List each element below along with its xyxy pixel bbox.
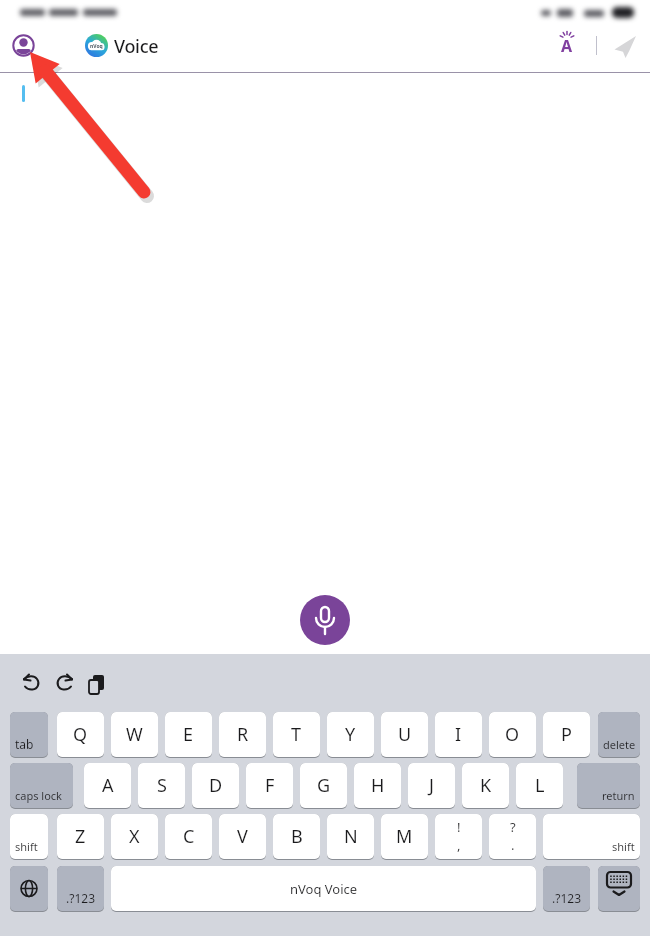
staticText: S	[157, 773, 167, 798]
staticText: V	[237, 824, 248, 849]
staticText: A	[102, 773, 114, 798]
button[interactable]: G	[300, 763, 347, 808]
button[interactable]: Z	[57, 814, 104, 859]
staticText: X	[129, 824, 140, 849]
staticText: G	[317, 773, 331, 798]
button[interactable]: H	[354, 763, 401, 808]
staticText: P	[561, 722, 572, 747]
button[interactable]: tab	[10, 712, 48, 757]
button[interactable]: T	[273, 712, 320, 757]
button[interactable]: B	[273, 814, 320, 859]
button[interactable]: R	[219, 712, 266, 757]
button[interactable]	[12, 34, 35, 57]
button[interactable]: ?	[489, 814, 536, 859]
staticText: .?123	[552, 890, 582, 906]
staticText: R	[237, 722, 249, 747]
button[interactable]	[10, 866, 48, 911]
staticText: shift	[612, 839, 635, 854]
button[interactable]: E	[165, 712, 212, 757]
button[interactable]: delete	[598, 712, 640, 757]
staticText: tab	[15, 736, 34, 752]
staticText: Voice	[114, 34, 159, 59]
staticText: return	[602, 788, 635, 803]
button[interactable]: X	[111, 814, 158, 859]
button[interactable]: L	[516, 763, 563, 808]
button[interactable]: S	[138, 763, 185, 808]
staticText: O	[505, 722, 520, 747]
staticText: N	[344, 824, 358, 849]
staticText: A	[561, 35, 573, 57]
staticText: Q	[73, 722, 88, 747]
button[interactable]: J	[408, 763, 455, 808]
button[interactable]: Y	[327, 712, 374, 757]
staticText: W	[126, 722, 143, 747]
staticText: I	[455, 722, 462, 747]
button[interactable]: Q	[57, 712, 104, 757]
staticText: U	[398, 722, 412, 747]
staticText: C	[183, 824, 195, 849]
button[interactable]: shift	[10, 814, 48, 859]
button[interactable]: K	[462, 763, 509, 808]
button[interactable]: C	[165, 814, 212, 859]
button[interactable]: V	[219, 814, 266, 859]
staticText: .	[511, 836, 515, 854]
button[interactable]: .?123	[57, 866, 104, 911]
staticText: delete	[603, 737, 635, 752]
button[interactable]	[598, 866, 640, 911]
staticText: ?	[510, 818, 516, 836]
staticText: E	[183, 722, 194, 747]
staticText: L	[535, 773, 545, 798]
staticText: .?123	[66, 890, 96, 906]
staticText: Y	[345, 722, 356, 747]
staticText: B	[291, 824, 303, 849]
button[interactable]: A	[553, 31, 581, 57]
button[interactable]	[611, 33, 639, 61]
button[interactable]	[300, 595, 350, 645]
staticText: Z	[75, 824, 86, 849]
button[interactable]: N	[327, 814, 374, 859]
staticText: nVoq	[90, 43, 103, 50]
staticText: M	[396, 824, 413, 849]
staticText: caps lock	[15, 788, 62, 803]
button[interactable]: return	[577, 763, 640, 808]
button[interactable]: I	[435, 712, 482, 757]
staticText: H	[371, 773, 385, 798]
button[interactable]: .?123	[543, 866, 590, 911]
button[interactable]: D	[192, 763, 239, 808]
button[interactable]: !	[435, 814, 482, 859]
staticText: J	[429, 773, 434, 798]
button[interactable]: U	[381, 712, 428, 757]
staticText: D	[209, 773, 223, 798]
staticText: shift	[15, 839, 38, 854]
staticText: F	[265, 773, 275, 798]
staticText: ,	[457, 836, 461, 854]
staticText: K	[480, 773, 492, 798]
button[interactable]: O	[489, 712, 536, 757]
staticText: nVoq Voice	[290, 880, 358, 898]
button[interactable]: nVoq Voice	[111, 866, 536, 911]
button[interactable]: M	[381, 814, 428, 859]
staticText: T	[291, 722, 302, 747]
button[interactable]: W	[111, 712, 158, 757]
button[interactable]: F	[246, 763, 293, 808]
button[interactable]: shift	[543, 814, 640, 859]
button[interactable]: A	[84, 763, 131, 808]
button[interactable]: caps lock	[10, 763, 73, 808]
staticText: !	[457, 818, 461, 836]
button[interactable]: P	[543, 712, 590, 757]
